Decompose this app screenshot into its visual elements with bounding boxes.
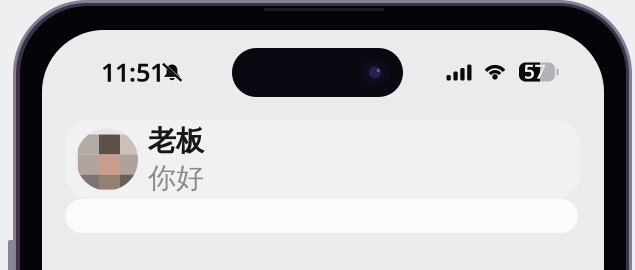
- staticText: 11:51: [101, 55, 164, 89]
- staticText: 57: [523, 58, 545, 84]
- staticText: 老板: [148, 124, 204, 158]
- button[interactable]: 老板: [65, 120, 580, 199]
- staticText: 57: [523, 58, 545, 84]
- staticText: 你好: [148, 161, 204, 195]
